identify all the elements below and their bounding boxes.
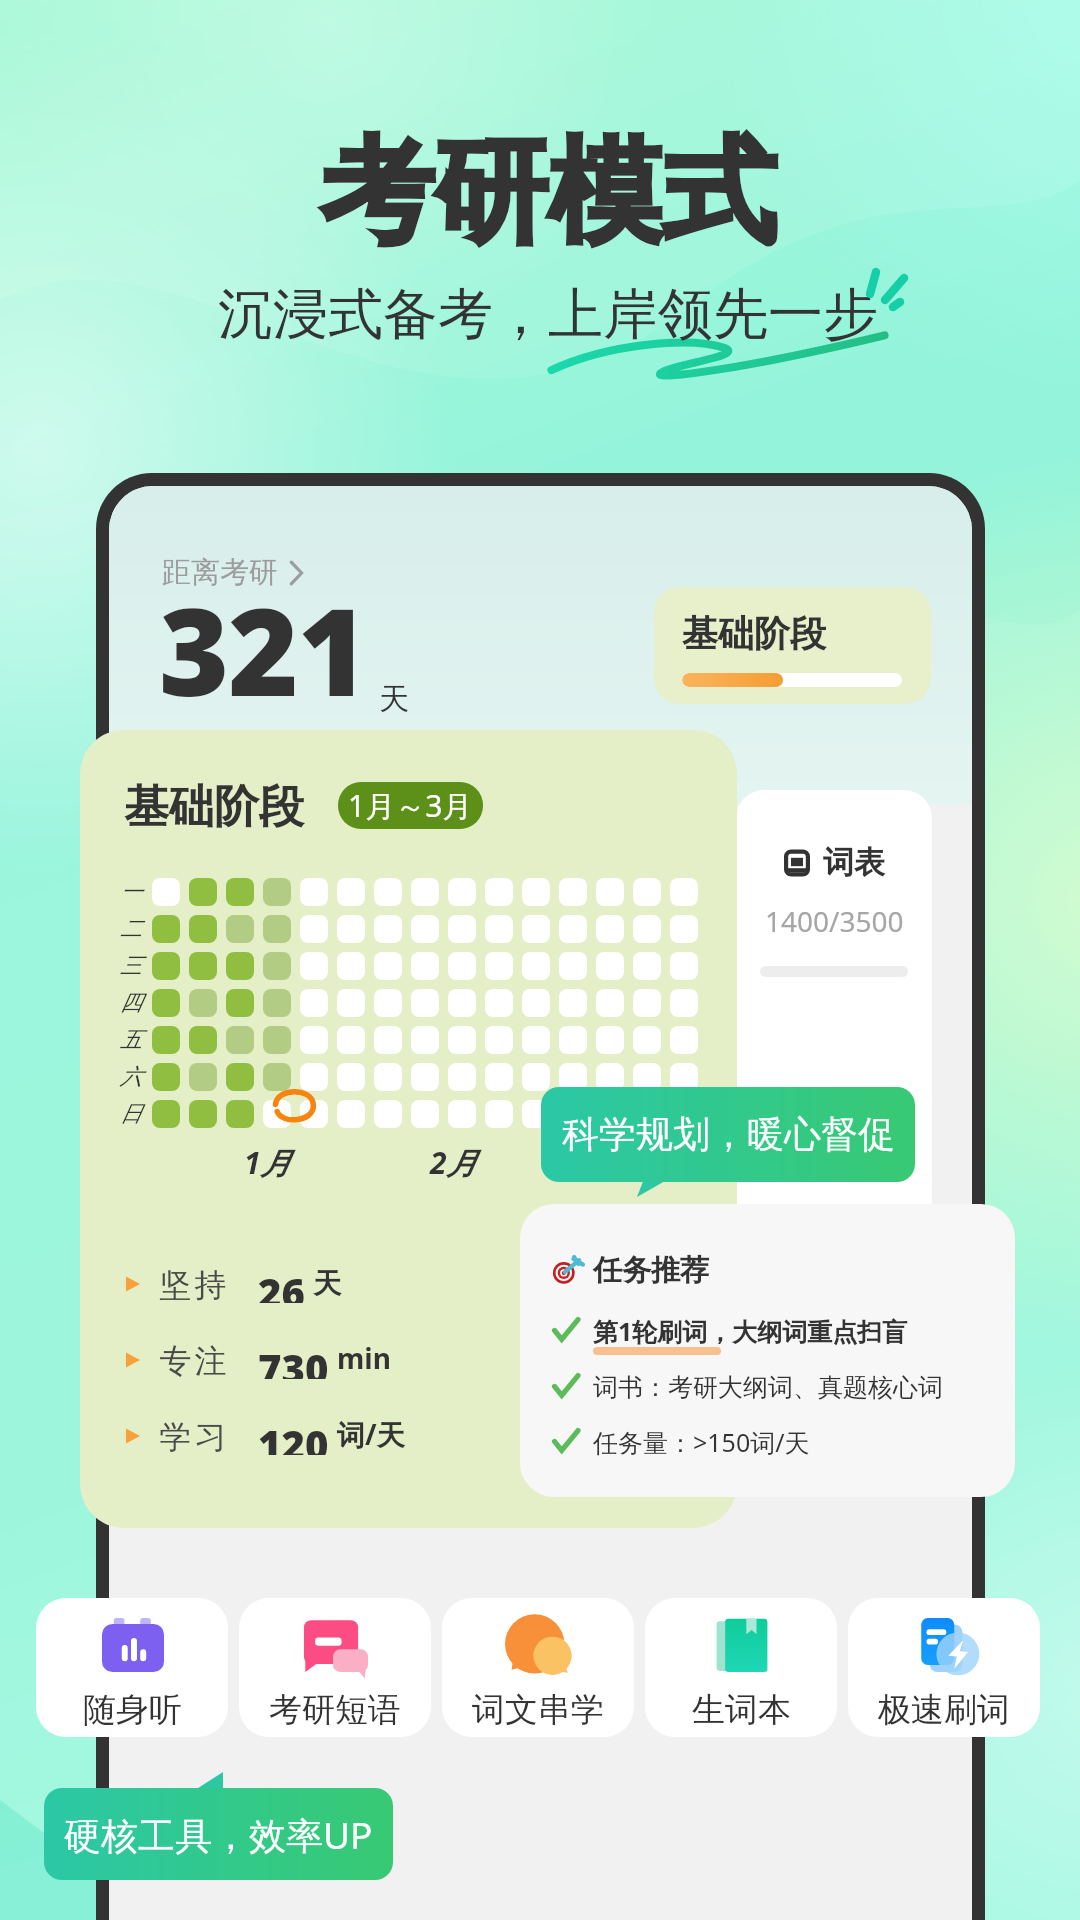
staticText: 词文串学	[472, 1689, 604, 1731]
button[interactable]: 词文串学	[442, 1598, 634, 1737]
staticText: 1月	[244, 1142, 291, 1183]
staticText: 任务推荐	[593, 1252, 709, 1289]
button[interactable]: 距离考研	[162, 554, 303, 591]
staticText: 二	[120, 915, 142, 943]
staticText: 六	[120, 1063, 142, 1091]
staticText: 日	[120, 1100, 142, 1128]
staticText: min	[337, 1339, 391, 1377]
staticText: 沉浸式备考，上岸领先一步	[218, 280, 878, 349]
staticText: 词书：考研大纲词、真题核心词	[593, 1372, 943, 1403]
staticText: 考研短语	[269, 1689, 401, 1731]
button[interactable]: 基础阶段	[654, 587, 931, 704]
staticText: 距离考研	[162, 554, 278, 591]
staticText: 学习	[158, 1417, 228, 1455]
staticText: 1400/3500	[765, 902, 904, 940]
button[interactable]: 硬核工具，效率UP	[44, 1788, 393, 1880]
staticText: 五	[120, 1026, 142, 1054]
staticText: 坚持	[158, 1265, 228, 1303]
staticText: 随身听	[83, 1689, 182, 1731]
staticText: 专注	[158, 1341, 228, 1379]
staticText: 天	[313, 1266, 341, 1301]
staticText: 第1轮刷词，大纲词重点扫盲	[593, 1314, 908, 1348]
staticText: 730	[258, 1341, 329, 1379]
staticText: 四	[120, 989, 142, 1017]
button[interactable]: 词表	[736, 790, 932, 1250]
button[interactable]: 随身听	[36, 1598, 228, 1737]
button[interactable]: 生词本	[645, 1598, 837, 1737]
staticText: 词/天	[337, 1415, 405, 1453]
staticText: 词表	[823, 843, 885, 882]
staticText: 考研模式	[320, 121, 776, 265]
staticText: 一	[120, 878, 142, 906]
staticText: 任务量：>150词/天	[593, 1425, 810, 1459]
button[interactable]: 考研短语	[239, 1598, 431, 1737]
staticText: 天	[379, 680, 409, 718]
staticText: 三	[120, 952, 142, 980]
button[interactable]: 任务推荐	[520, 1204, 1015, 1497]
staticText: 2月	[430, 1142, 477, 1183]
staticText: 硬核工具，效率UP	[64, 1809, 373, 1860]
staticText: 基础阶段	[682, 611, 826, 656]
button[interactable]: 基础阶段	[80, 730, 737, 1528]
staticText: 极速刷词	[878, 1689, 1010, 1731]
staticText: 基础阶段	[124, 779, 304, 836]
staticText: 生词本	[692, 1689, 791, 1731]
staticText: 321	[159, 568, 367, 731]
staticText: 科学规划，暖心督促	[562, 1111, 895, 1158]
staticText: 26	[258, 1265, 305, 1303]
staticText: 1月～3月	[348, 785, 473, 826]
button[interactable]: 极速刷词	[848, 1598, 1040, 1737]
button[interactable]: 科学规划，暖心督促	[541, 1087, 915, 1182]
staticText: 120	[258, 1417, 329, 1455]
